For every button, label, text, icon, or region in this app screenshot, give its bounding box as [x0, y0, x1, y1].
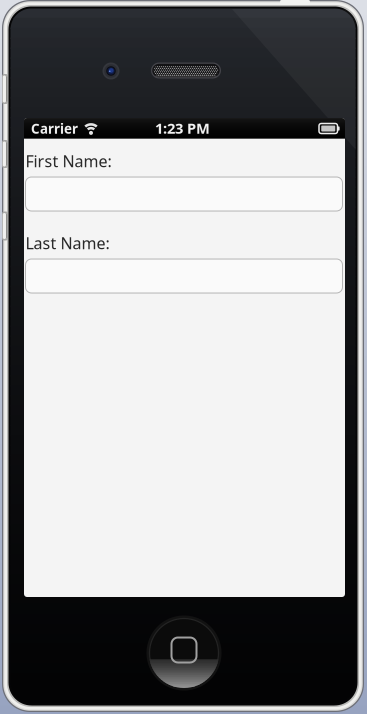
staticText: First Name: [25, 150, 111, 172]
button[interactable]: Last Name [25, 259, 342, 293]
button[interactable]: First Name [25, 177, 342, 211]
staticText: Last Name: [25, 232, 109, 254]
staticText: Carrier [31, 120, 78, 137]
staticText: 1:23 PM [155, 118, 210, 138]
button[interactable]: Home [149, 618, 219, 688]
